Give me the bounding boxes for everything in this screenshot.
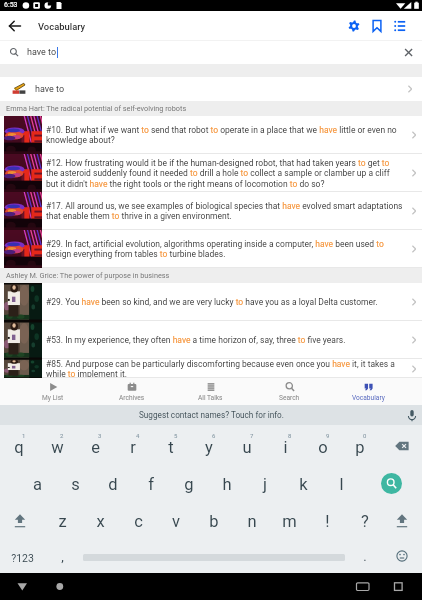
button[interactable]: d xyxy=(95,471,131,497)
staticText: 4 xyxy=(136,432,140,439)
staticText: 5 xyxy=(174,432,178,439)
button[interactable]: My List xyxy=(14,378,92,405)
button[interactable]: Archives xyxy=(92,378,171,405)
button[interactable]: Bookmarks xyxy=(365,11,388,41)
button[interactable]: g xyxy=(171,471,207,497)
staticText: m xyxy=(282,512,297,531)
staticText: e xyxy=(91,438,100,457)
button[interactable]: Settings xyxy=(342,11,365,41)
staticText: , xyxy=(61,549,64,564)
button[interactable]: z xyxy=(44,508,80,534)
staticText: s xyxy=(71,475,80,494)
button[interactable]: Search xyxy=(250,378,329,405)
staticText: c xyxy=(134,512,143,531)
staticText: 0 xyxy=(363,432,367,439)
staticText: n xyxy=(247,512,257,531)
staticText: #29. You have been so kind, and we are v… xyxy=(46,297,378,307)
button[interactable]: Shift xyxy=(7,508,33,534)
button[interactable]: #85. And purpose can be particularly dis… xyxy=(0,359,422,378)
button[interactable]: n xyxy=(234,508,270,534)
button[interactable]: b xyxy=(196,508,232,534)
staticText: . xyxy=(363,549,367,564)
button[interactable]: All Talks xyxy=(171,378,250,405)
button[interactable]: Emoji xyxy=(389,543,415,569)
button[interactable]: f xyxy=(133,471,169,497)
button[interactable]: ?123 xyxy=(4,545,40,571)
button[interactable]: ! xyxy=(309,508,345,534)
staticText: ! xyxy=(325,512,330,531)
button[interactable]: Word list xyxy=(388,11,411,41)
staticText: b xyxy=(209,512,219,531)
button[interactable]: Voice input xyxy=(402,405,422,425)
button[interactable]: #10. But what if we want to send that ro… xyxy=(0,116,422,154)
staticText: #17. All around us, we see examples of b… xyxy=(46,201,403,221)
staticText: k xyxy=(299,475,308,494)
button[interactable]: Clear search xyxy=(396,41,422,64)
button[interactable]: c xyxy=(120,508,156,534)
button[interactable]: v xyxy=(158,508,194,534)
button[interactable]: #17. All around us, we see examples of b… xyxy=(0,192,422,230)
button[interactable]: Shift xyxy=(389,508,415,534)
button[interactable]: u xyxy=(229,434,265,460)
button[interactable]: h xyxy=(209,471,245,497)
button[interactable]: l xyxy=(323,471,359,497)
button[interactable]: a xyxy=(19,471,55,497)
button[interactable]: Backspace xyxy=(389,433,415,459)
button[interactable]: #29. In fact, artificial evolution, algo… xyxy=(0,230,422,268)
staticText: ? xyxy=(361,512,369,531)
staticText: My List xyxy=(42,394,64,402)
button[interactable]: x xyxy=(82,508,118,534)
staticText: y xyxy=(205,438,213,457)
staticText: 2 xyxy=(60,432,64,439)
staticText: o xyxy=(318,438,328,457)
staticText: d xyxy=(108,475,118,494)
staticText: j xyxy=(263,475,267,494)
button[interactable]: o xyxy=(305,434,341,460)
staticText: 3 xyxy=(98,432,102,439)
button[interactable]: Back xyxy=(12,573,34,600)
staticText: 1 xyxy=(22,432,26,439)
button[interactable]: Search xyxy=(381,473,402,494)
staticText: Vocabulary xyxy=(352,394,385,402)
staticText: x xyxy=(96,512,105,531)
button[interactable]: e xyxy=(77,434,113,460)
staticText: Vocabulary xyxy=(38,21,86,32)
staticText: 6:53 xyxy=(4,1,18,9)
staticText: have to xyxy=(35,84,65,95)
button[interactable]: Vocabulary xyxy=(329,378,408,405)
button[interactable]: k xyxy=(285,471,321,497)
button[interactable]: j xyxy=(247,471,283,497)
button[interactable]: s xyxy=(57,471,93,497)
button[interactable]: p xyxy=(342,434,378,460)
button[interactable]: q xyxy=(1,434,37,460)
staticText: h xyxy=(222,475,232,494)
staticText: i xyxy=(283,438,288,457)
button[interactable]: Back xyxy=(0,11,30,41)
button[interactable]: i xyxy=(267,434,303,460)
button[interactable]: ? xyxy=(347,508,383,534)
button[interactable]: have to xyxy=(0,77,422,101)
button[interactable]: #12. How frustrating would it be if the … xyxy=(0,154,422,192)
staticText: #12. How frustrating would it be if the … xyxy=(46,158,403,189)
staticText: All Talks xyxy=(198,394,223,402)
button[interactable]: Home xyxy=(49,573,71,600)
staticText: ?123 xyxy=(11,552,34,564)
button[interactable]: m xyxy=(271,508,307,534)
button[interactable]: r xyxy=(115,434,151,460)
button[interactable]: , xyxy=(44,543,80,569)
staticText: #85. And purpose can be particularly dis… xyxy=(46,359,403,378)
staticText: Search xyxy=(279,394,300,402)
staticText: 6 xyxy=(212,432,216,439)
button[interactable]: t xyxy=(153,434,189,460)
button[interactable]: #29. You have been so kind, and we are v… xyxy=(0,283,422,321)
staticText: #53. In my experience, they often have a… xyxy=(46,335,346,345)
button[interactable]: y xyxy=(191,434,227,460)
staticText: #29. In fact, artificial evolution, algo… xyxy=(46,239,403,259)
staticText: t xyxy=(168,438,174,457)
button[interactable]: . xyxy=(347,543,383,569)
button[interactable]: w xyxy=(39,434,75,460)
staticText: 9 xyxy=(326,432,330,439)
button[interactable]: #53. In my experience, they often have a… xyxy=(0,321,422,359)
staticText: Suggest contact names? Touch for info. xyxy=(139,410,284,420)
